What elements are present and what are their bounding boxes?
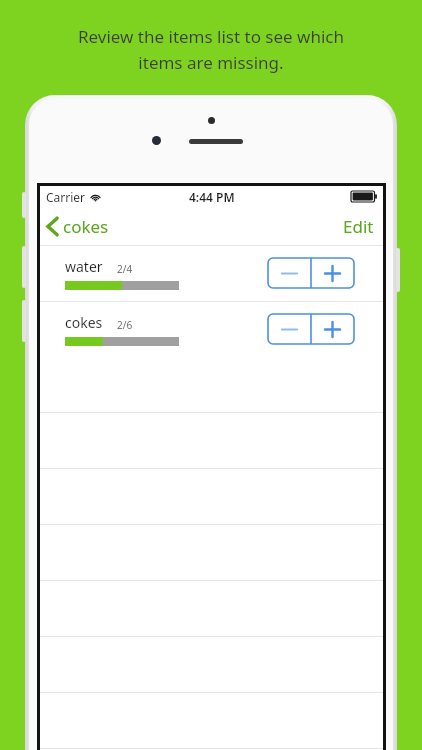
staticText: water: [65, 257, 103, 276]
staticText: Edit: [343, 215, 374, 238]
staticText: Review the items list to see which items…: [0, 25, 422, 74]
button[interactable]: Increase: [311, 258, 354, 288]
staticText: 2/4: [117, 262, 133, 276]
button[interactable]: cokes: [40, 301, 383, 357]
other: Back: [47, 217, 58, 236]
button[interactable]: Decrease: [268, 314, 311, 344]
button[interactable]: Decrease: [268, 258, 311, 288]
staticText: 2/6: [117, 318, 133, 332]
staticText: Carrier: [46, 189, 86, 205]
button[interactable]: Back: [40, 211, 117, 242]
button[interactable]: Increase: [311, 314, 354, 344]
staticText: 4:44 PM: [189, 189, 235, 205]
staticText: cokes: [63, 215, 109, 238]
button[interactable]: water: [40, 245, 383, 301]
staticText: cokes: [65, 313, 103, 332]
button[interactable]: Edit: [334, 210, 383, 243]
